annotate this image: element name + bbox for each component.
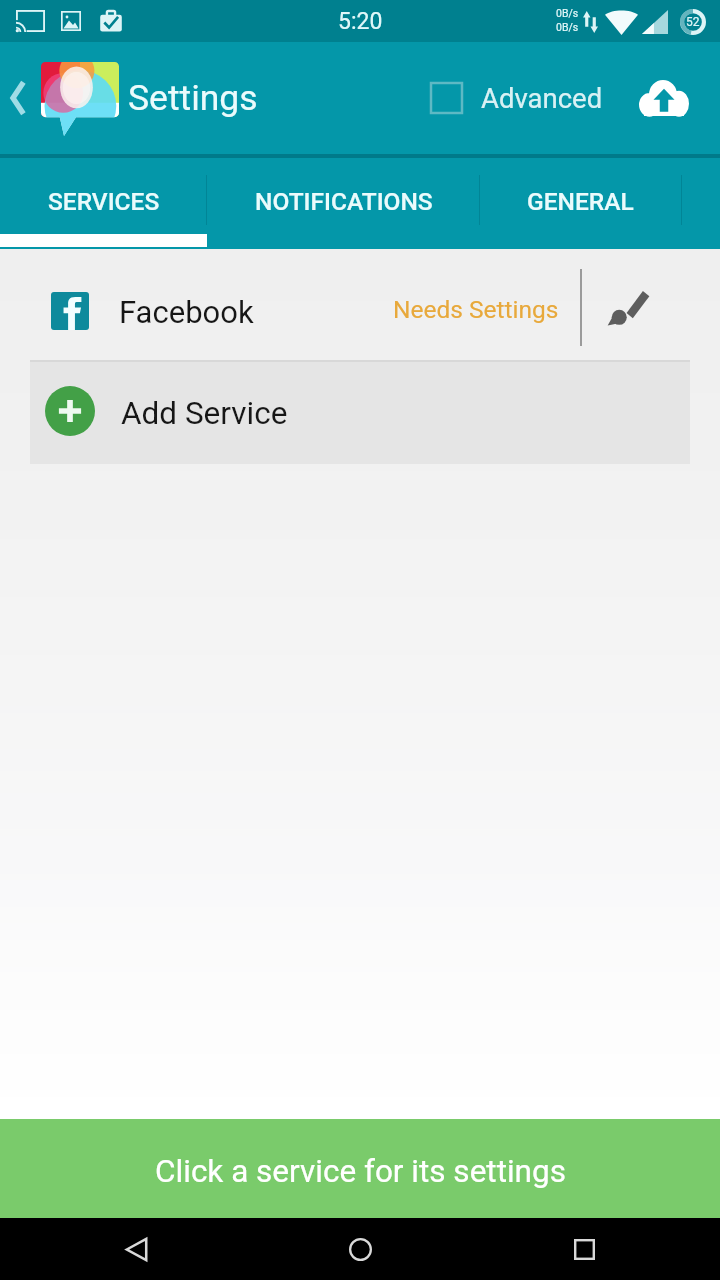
button[interactable]: SERVICES xyxy=(0,158,207,249)
button[interactable]: Click a service for its settings xyxy=(0,1119,720,1218)
staticText: 0B/s xyxy=(556,7,579,19)
button[interactable]: Home xyxy=(330,1218,390,1280)
staticText: Add Service xyxy=(121,395,288,432)
button[interactable]: GENERAL xyxy=(480,158,681,249)
button[interactable]: Edit service settings xyxy=(586,249,690,349)
button[interactable]: Recent apps xyxy=(554,1218,614,1280)
staticText: Advanced xyxy=(481,82,603,114)
staticText: Needs Settings xyxy=(393,295,559,324)
staticText: Settings xyxy=(128,77,258,119)
staticText: SERVICES xyxy=(48,187,160,216)
button[interactable]: Back xyxy=(106,1218,166,1280)
staticText: 0B/s xyxy=(556,21,579,33)
staticText: 52 xyxy=(686,15,700,29)
button[interactable]: Upload to cloud xyxy=(628,68,700,128)
button[interactable]: Back xyxy=(0,42,36,154)
staticText: 5:20 xyxy=(338,8,383,35)
button[interactable]: Advanced xyxy=(420,70,603,126)
button[interactable]: Facebook xyxy=(0,249,720,349)
button[interactable]: NOTIFICATIONS xyxy=(207,158,480,249)
staticText: Click a service for its settings xyxy=(155,1153,566,1190)
staticText: GENERAL xyxy=(527,187,634,216)
staticText: NOTIFICATIONS xyxy=(255,187,433,216)
staticText: Facebook xyxy=(119,294,254,330)
button[interactable]: Add Service xyxy=(30,362,690,464)
